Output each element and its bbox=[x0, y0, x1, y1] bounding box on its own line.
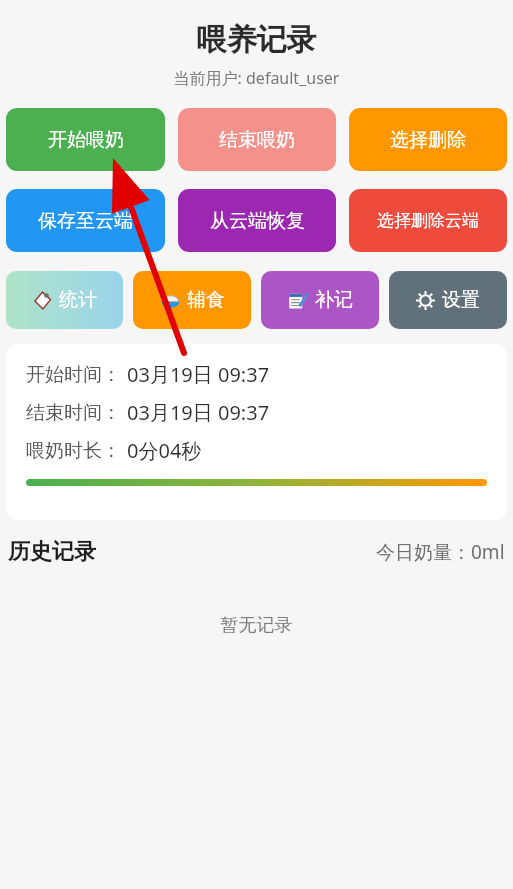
staticText: 历史记录 bbox=[8, 538, 96, 566]
staticText: 暂无记录 bbox=[0, 614, 513, 637]
staticText: 选择删除云端 bbox=[377, 210, 479, 231]
staticText: 统计 bbox=[59, 288, 97, 312]
staticText: 03月19日 09:37 bbox=[127, 399, 270, 426]
button[interactable]: 辅食 bbox=[133, 271, 251, 329]
staticText: 喂养记录 bbox=[0, 21, 513, 59]
staticText: 从云端恢复 bbox=[210, 209, 305, 233]
staticText: 设置 bbox=[442, 288, 480, 312]
button[interactable]: 统计 bbox=[6, 271, 123, 329]
staticText: 结束时间： bbox=[26, 401, 121, 425]
staticText: 开始时间： bbox=[26, 363, 121, 387]
staticText: 0分04秒 bbox=[127, 437, 202, 464]
staticText: 今日奶量：0ml bbox=[376, 539, 505, 565]
staticText: 结束喂奶 bbox=[219, 128, 295, 152]
button[interactable]: 选择删除 bbox=[349, 108, 507, 171]
button[interactable]: 设置 bbox=[389, 271, 507, 329]
button[interactable]: 开始喂奶 bbox=[6, 108, 165, 171]
staticText: 选择删除 bbox=[390, 128, 466, 152]
button[interactable]: 结束喂奶 bbox=[178, 108, 336, 171]
staticText: 当前用户: default_user bbox=[0, 67, 513, 89]
staticText: 喂奶时长： bbox=[26, 439, 121, 463]
button[interactable]: 保存至云端 bbox=[6, 189, 165, 252]
staticText: 辅食 bbox=[187, 288, 225, 312]
staticText: 开始喂奶 bbox=[48, 128, 124, 152]
staticText: 保存至云端 bbox=[38, 209, 133, 233]
button[interactable]: 从云端恢复 bbox=[178, 189, 336, 252]
button[interactable]: 补记 bbox=[261, 271, 379, 329]
staticText: 补记 bbox=[315, 288, 353, 312]
button[interactable]: 选择删除云端 bbox=[349, 189, 507, 252]
staticText: 03月19日 09:37 bbox=[127, 361, 270, 388]
